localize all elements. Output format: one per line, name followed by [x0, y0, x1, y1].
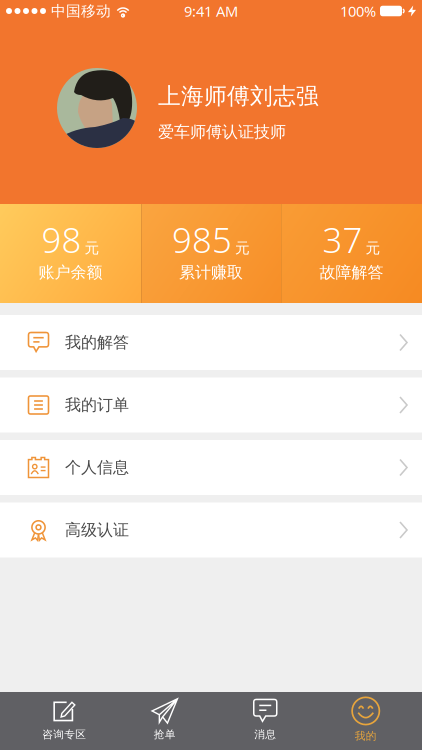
button[interactable]: 抢单	[114, 698, 215, 741]
staticText: 故障解答	[319, 263, 383, 282]
button[interactable]: 985	[141, 204, 281, 303]
button[interactable]: 98	[0, 204, 141, 303]
staticText: 我的解答	[65, 333, 129, 352]
staticText: 爱车师傅认证技师	[158, 122, 286, 142]
staticText: 上海师傅刘志强	[158, 82, 319, 110]
staticText: 中国移动	[51, 2, 111, 20]
staticText: 985	[172, 217, 232, 263]
staticText: 100%	[340, 1, 376, 21]
button[interactable]: 个人信息	[0, 440, 422, 495]
button[interactable]: 高级认证	[0, 502, 422, 557]
staticText: 9:41 AM	[184, 1, 238, 21]
staticText: 咨询专区	[42, 728, 86, 741]
staticText: 消息	[254, 728, 276, 741]
button[interactable]: 我的订单	[0, 377, 422, 432]
staticText: 我的	[355, 729, 377, 742]
button[interactable]: 我的	[315, 696, 416, 742]
staticText: 98	[41, 217, 81, 263]
staticText: 抢单	[154, 728, 176, 741]
staticText: 高级认证	[65, 520, 129, 540]
staticText: 元	[84, 239, 99, 257]
button[interactable]: 咨询专区	[14, 698, 114, 741]
staticText: 个人信息	[65, 458, 129, 477]
staticText: 我的订单	[65, 395, 129, 415]
staticText: 累计赚取	[179, 263, 243, 282]
staticText: 元	[365, 239, 380, 257]
staticText: 账户余额	[38, 263, 102, 282]
button[interactable]: 消息	[215, 698, 315, 741]
staticText: 元	[235, 239, 250, 257]
button[interactable]: 37	[281, 204, 422, 303]
staticText: 37	[322, 217, 362, 263]
button[interactable]: 我的解答	[0, 315, 422, 370]
